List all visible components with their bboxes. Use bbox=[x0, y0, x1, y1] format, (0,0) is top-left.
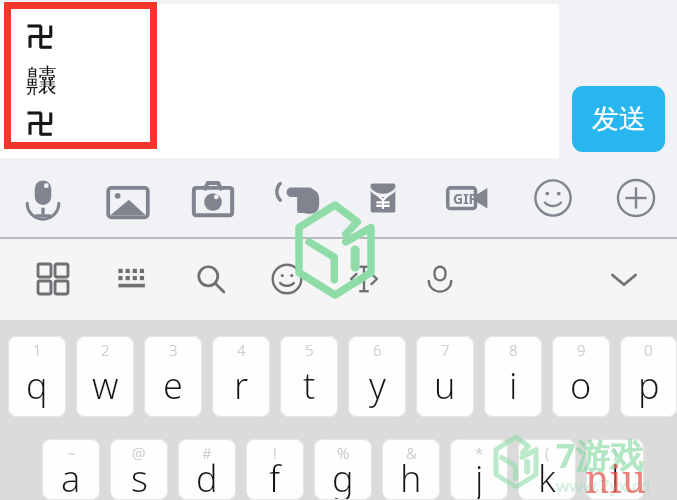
staticText: u bbox=[434, 361, 456, 410]
button[interactable]: * bbox=[450, 439, 508, 500]
staticText: ) bbox=[613, 443, 618, 463]
button[interactable]: 3 bbox=[144, 336, 202, 417]
staticText: % bbox=[337, 443, 350, 463]
staticText: niu bbox=[585, 452, 646, 500]
button[interactable]: GIF bbox=[425, 158, 510, 237]
staticText: t bbox=[303, 361, 316, 410]
button[interactable]: Nudge bbox=[255, 158, 340, 237]
button[interactable]: 2 bbox=[76, 336, 134, 417]
staticText: # bbox=[202, 443, 212, 463]
button[interactable]: ! bbox=[246, 439, 304, 500]
staticText: j bbox=[475, 454, 484, 500]
staticText: a bbox=[61, 454, 81, 500]
staticText: www.7yx.cd bbox=[556, 474, 651, 497]
button[interactable]: # bbox=[178, 439, 236, 500]
staticText: o bbox=[570, 361, 592, 410]
staticText: y bbox=[369, 361, 386, 410]
staticText: i bbox=[509, 361, 518, 410]
staticText: q bbox=[26, 361, 48, 410]
button[interactable]: 齉 bbox=[11, 9, 150, 142]
button[interactable]: & bbox=[382, 439, 440, 500]
staticText: h bbox=[400, 454, 422, 500]
staticText: l bbox=[611, 454, 620, 500]
button[interactable]: Photo bbox=[85, 158, 170, 237]
staticText: @ bbox=[132, 443, 146, 463]
button[interactable]: Red packet bbox=[340, 158, 425, 237]
button[interactable]: 0 bbox=[620, 336, 677, 417]
staticText: d bbox=[196, 454, 218, 500]
staticText: 7 bbox=[441, 340, 450, 360]
staticText: e bbox=[163, 361, 183, 410]
staticText: 齉 bbox=[26, 61, 57, 105]
staticText: 0 bbox=[644, 340, 653, 360]
staticText: 1 bbox=[33, 340, 42, 360]
button[interactable]: Emoji bbox=[510, 158, 595, 237]
staticText: g bbox=[332, 454, 354, 500]
button[interactable]: 6 bbox=[348, 336, 406, 417]
staticText: & bbox=[406, 443, 417, 463]
button[interactable]: Text cursor bbox=[342, 257, 386, 301]
button[interactable]: ( bbox=[518, 439, 576, 500]
staticText: 发送 bbox=[592, 102, 646, 136]
button[interactable]: 8 bbox=[484, 336, 542, 417]
button[interactable]: Search bbox=[189, 257, 233, 301]
button[interactable]: 4 bbox=[212, 336, 270, 417]
staticText: 7游戏 bbox=[556, 432, 644, 478]
staticText: s bbox=[131, 454, 148, 500]
button[interactable]: 1 bbox=[8, 336, 66, 417]
button[interactable]: Voice message bbox=[0, 158, 85, 237]
staticText: 2 bbox=[101, 340, 110, 360]
staticText: 9 bbox=[577, 340, 586, 360]
staticText: r bbox=[234, 361, 249, 410]
staticText: k bbox=[538, 454, 556, 500]
staticText: 6 bbox=[373, 340, 382, 360]
staticText: ( bbox=[545, 443, 550, 463]
button[interactable]: 9 bbox=[552, 336, 610, 417]
button[interactable]: Collapse keyboard bbox=[602, 257, 646, 301]
staticText: 4 bbox=[237, 340, 246, 360]
button[interactable]: Apps bbox=[31, 257, 75, 301]
button[interactable]: % bbox=[314, 439, 372, 500]
button[interactable]: Keyboard bbox=[110, 257, 154, 301]
staticText: w bbox=[92, 361, 119, 410]
button[interactable]: ~ bbox=[42, 439, 100, 500]
staticText: GIF bbox=[453, 189, 477, 208]
staticText: 5 bbox=[305, 340, 314, 360]
staticText: 3 bbox=[169, 340, 178, 360]
button[interactable]: 7 bbox=[416, 336, 474, 417]
button[interactable]: More bbox=[595, 158, 677, 237]
staticText: f bbox=[269, 454, 281, 500]
button[interactable]: 发送 bbox=[572, 86, 665, 152]
staticText: p bbox=[638, 361, 660, 410]
staticText: 8 bbox=[509, 340, 518, 360]
staticText: ! bbox=[273, 443, 277, 463]
staticText: ~ bbox=[67, 443, 76, 463]
button[interactable]: Camera bbox=[170, 158, 255, 237]
staticText: * bbox=[475, 443, 484, 463]
button[interactable]: Voice input bbox=[418, 257, 462, 301]
button[interactable]: 5 bbox=[280, 336, 338, 417]
button[interactable]: @ bbox=[110, 439, 168, 500]
button[interactable]: ) bbox=[586, 439, 644, 500]
button[interactable]: Emoji bbox=[265, 257, 309, 301]
